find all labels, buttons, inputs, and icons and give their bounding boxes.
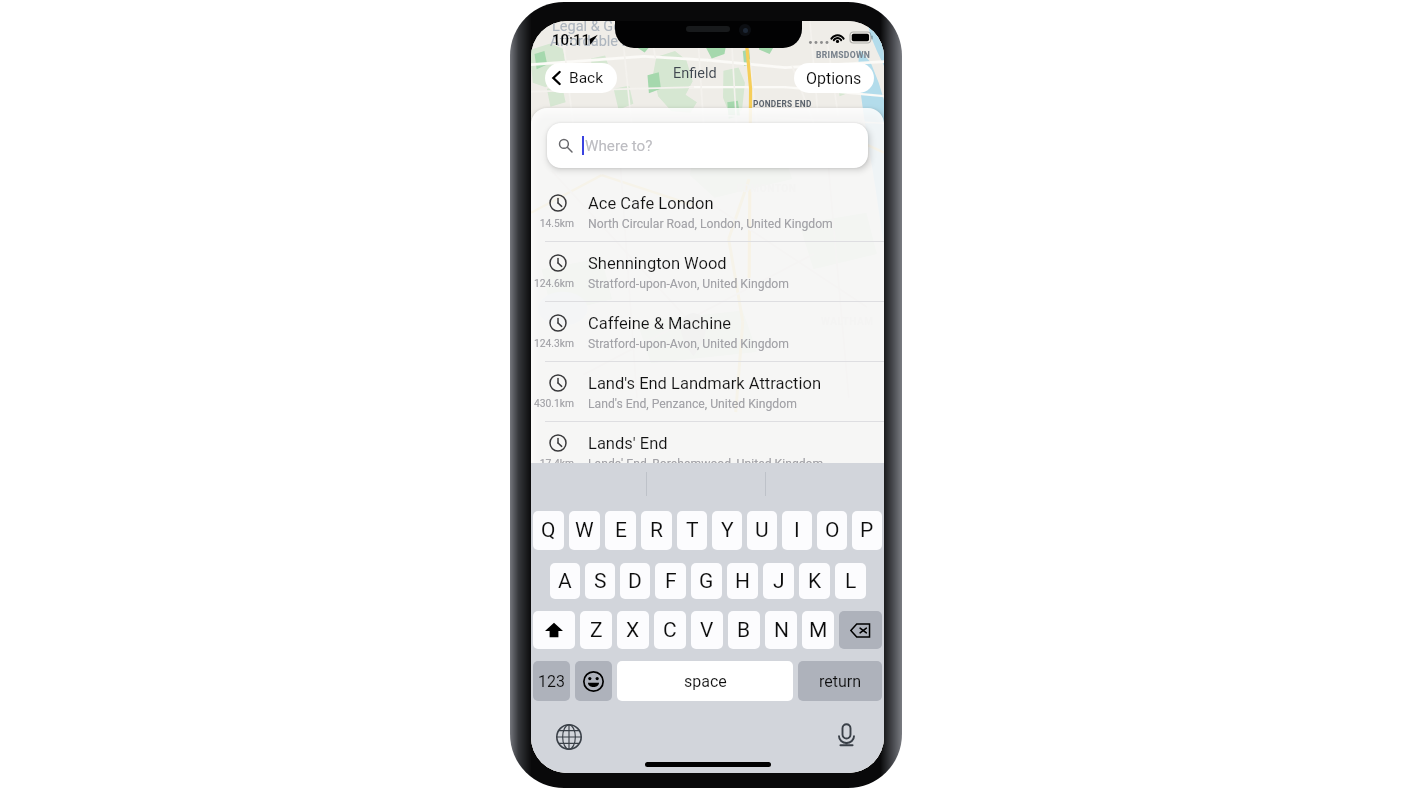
staticText: 14.5km (532, 217, 574, 229)
button[interactable]: U (747, 511, 777, 550)
staticText: M (809, 618, 828, 643)
button[interactable]: Lands' End (531, 422, 884, 481)
staticText: N (774, 618, 789, 643)
staticText: E (615, 518, 627, 543)
staticText: K (808, 569, 822, 594)
button[interactable]: H (727, 563, 758, 599)
staticText: Ace Cafe London (588, 194, 714, 213)
staticText: A (558, 569, 572, 594)
button[interactable]: P (852, 511, 882, 550)
staticText: L (845, 569, 857, 594)
staticText: Lands' End, Borehamwood, United Kingdom (588, 457, 824, 471)
staticText: 430.1km (532, 397, 574, 409)
staticText: Lands' End (588, 434, 668, 453)
button[interactable]: D (620, 563, 650, 599)
staticText: Back (569, 69, 604, 87)
staticText: Shennington Wood (588, 254, 727, 273)
button[interactable]: Q (533, 511, 564, 550)
button[interactable]: Shennington Wood (531, 242, 884, 301)
button[interactable]: N (765, 611, 797, 649)
button[interactable]: Ace Cafe London (531, 182, 884, 241)
staticText: H (735, 569, 750, 594)
staticText: T (686, 518, 699, 543)
staticText: Where to? (585, 137, 653, 155)
staticText: Caffeine & Machine (588, 314, 732, 333)
staticText: 17.4km (532, 457, 574, 469)
staticText: G (699, 569, 714, 594)
staticText: return (819, 672, 862, 691)
button[interactable]: E (605, 511, 636, 550)
button[interactable]: O (817, 511, 847, 550)
button[interactable]: Caffeine & Machine (531, 302, 884, 361)
button[interactable]: C (654, 611, 686, 649)
button[interactable]: F (655, 563, 686, 599)
staticText: Legal & Ge (552, 21, 621, 35)
staticText: BRIMSDOWN (816, 50, 871, 60)
button[interactable]: G (691, 563, 722, 599)
staticText: Options (806, 69, 862, 88)
button[interactable]: M (802, 611, 834, 649)
button[interactable]: Backspace (839, 611, 882, 649)
button[interactable]: Back (545, 63, 617, 93)
staticText: Land's End Landmark Attraction (588, 374, 822, 393)
staticText: F (665, 569, 677, 594)
staticText: Land's End, Penzance, United Kingdom (588, 397, 797, 411)
button[interactable]: L (835, 563, 866, 599)
button[interactable]: return (798, 661, 882, 701)
button[interactable]: space (617, 661, 793, 701)
staticText: 10:11 (552, 31, 591, 49)
button[interactable]: B (728, 611, 760, 649)
button[interactable]: Shift (533, 611, 575, 649)
staticText: J (773, 569, 785, 594)
staticText: 124.3km (532, 337, 574, 349)
staticText: O (825, 518, 840, 543)
staticText: Y (721, 518, 734, 543)
button[interactable]: Z (580, 611, 612, 649)
staticText: Q (541, 518, 556, 543)
staticText: W (575, 518, 594, 543)
button[interactable]: Emoji (575, 661, 612, 701)
staticText: D (628, 569, 642, 594)
staticText: Stratford-upon-Avon, United Kingdom (588, 277, 789, 291)
button[interactable]: S (585, 563, 615, 599)
staticText: North Circular Road, London, United King… (588, 217, 833, 231)
staticText: S (594, 569, 607, 594)
staticText: space (684, 672, 727, 691)
button[interactable]: X (617, 611, 649, 649)
button[interactable]: Change keyboard language (556, 724, 582, 750)
button[interactable]: T (677, 511, 707, 550)
button[interactable]: K (799, 563, 830, 599)
staticText: B (737, 618, 751, 643)
staticText: PONDERS END (753, 99, 812, 109)
button[interactable]: Land's End Landmark Attraction (531, 362, 884, 421)
staticText: Z (590, 618, 603, 643)
button[interactable]: W (569, 511, 600, 550)
button[interactable]: Where to? (547, 123, 868, 168)
button[interactable]: Options (794, 63, 874, 93)
staticText: 123 (538, 672, 565, 691)
staticText: R (650, 518, 663, 543)
staticText: Enfield (673, 65, 717, 82)
button[interactable]: 123 (533, 661, 570, 701)
button[interactable]: A (550, 563, 580, 599)
staticText: Stratford-upon-Avon, United Kingdom (588, 337, 789, 351)
staticText: V (700, 618, 714, 643)
button[interactable]: V (691, 611, 723, 649)
staticText: U (755, 518, 769, 543)
button[interactable]: R (641, 511, 672, 550)
staticText: I (794, 518, 800, 543)
staticText: X (626, 618, 640, 643)
button[interactable]: Dictation (834, 722, 859, 747)
button[interactable]: I (782, 511, 812, 550)
staticText: Affordable H (550, 33, 632, 50)
button[interactable]: J (763, 563, 794, 599)
staticText: C (663, 618, 677, 643)
button[interactable]: Y (712, 511, 742, 550)
staticText: 124.6km (532, 277, 574, 289)
staticText: P (860, 518, 874, 543)
